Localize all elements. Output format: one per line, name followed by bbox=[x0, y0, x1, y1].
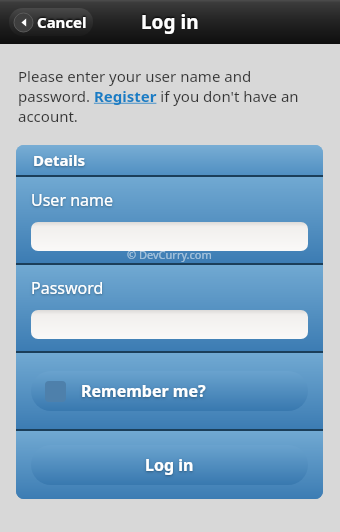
staticText: Log in bbox=[141, 9, 199, 35]
button[interactable]: Cancel bbox=[9, 8, 93, 36]
button[interactable]: Log in bbox=[31, 445, 308, 485]
button[interactable]: Remember me? bbox=[31, 371, 308, 411]
staticText: Please enter your user name and password… bbox=[18, 66, 322, 126]
staticText: Log in bbox=[145, 454, 194, 476]
staticText: © DevCurry.com bbox=[127, 247, 212, 262]
button[interactable] bbox=[31, 310, 308, 339]
staticText: Details bbox=[33, 150, 85, 170]
staticText: Cancel bbox=[37, 12, 87, 32]
button[interactable] bbox=[31, 222, 308, 251]
staticText: Password bbox=[31, 277, 104, 299]
staticText: Remember me? bbox=[81, 380, 206, 402]
staticText: User name bbox=[31, 189, 114, 211]
